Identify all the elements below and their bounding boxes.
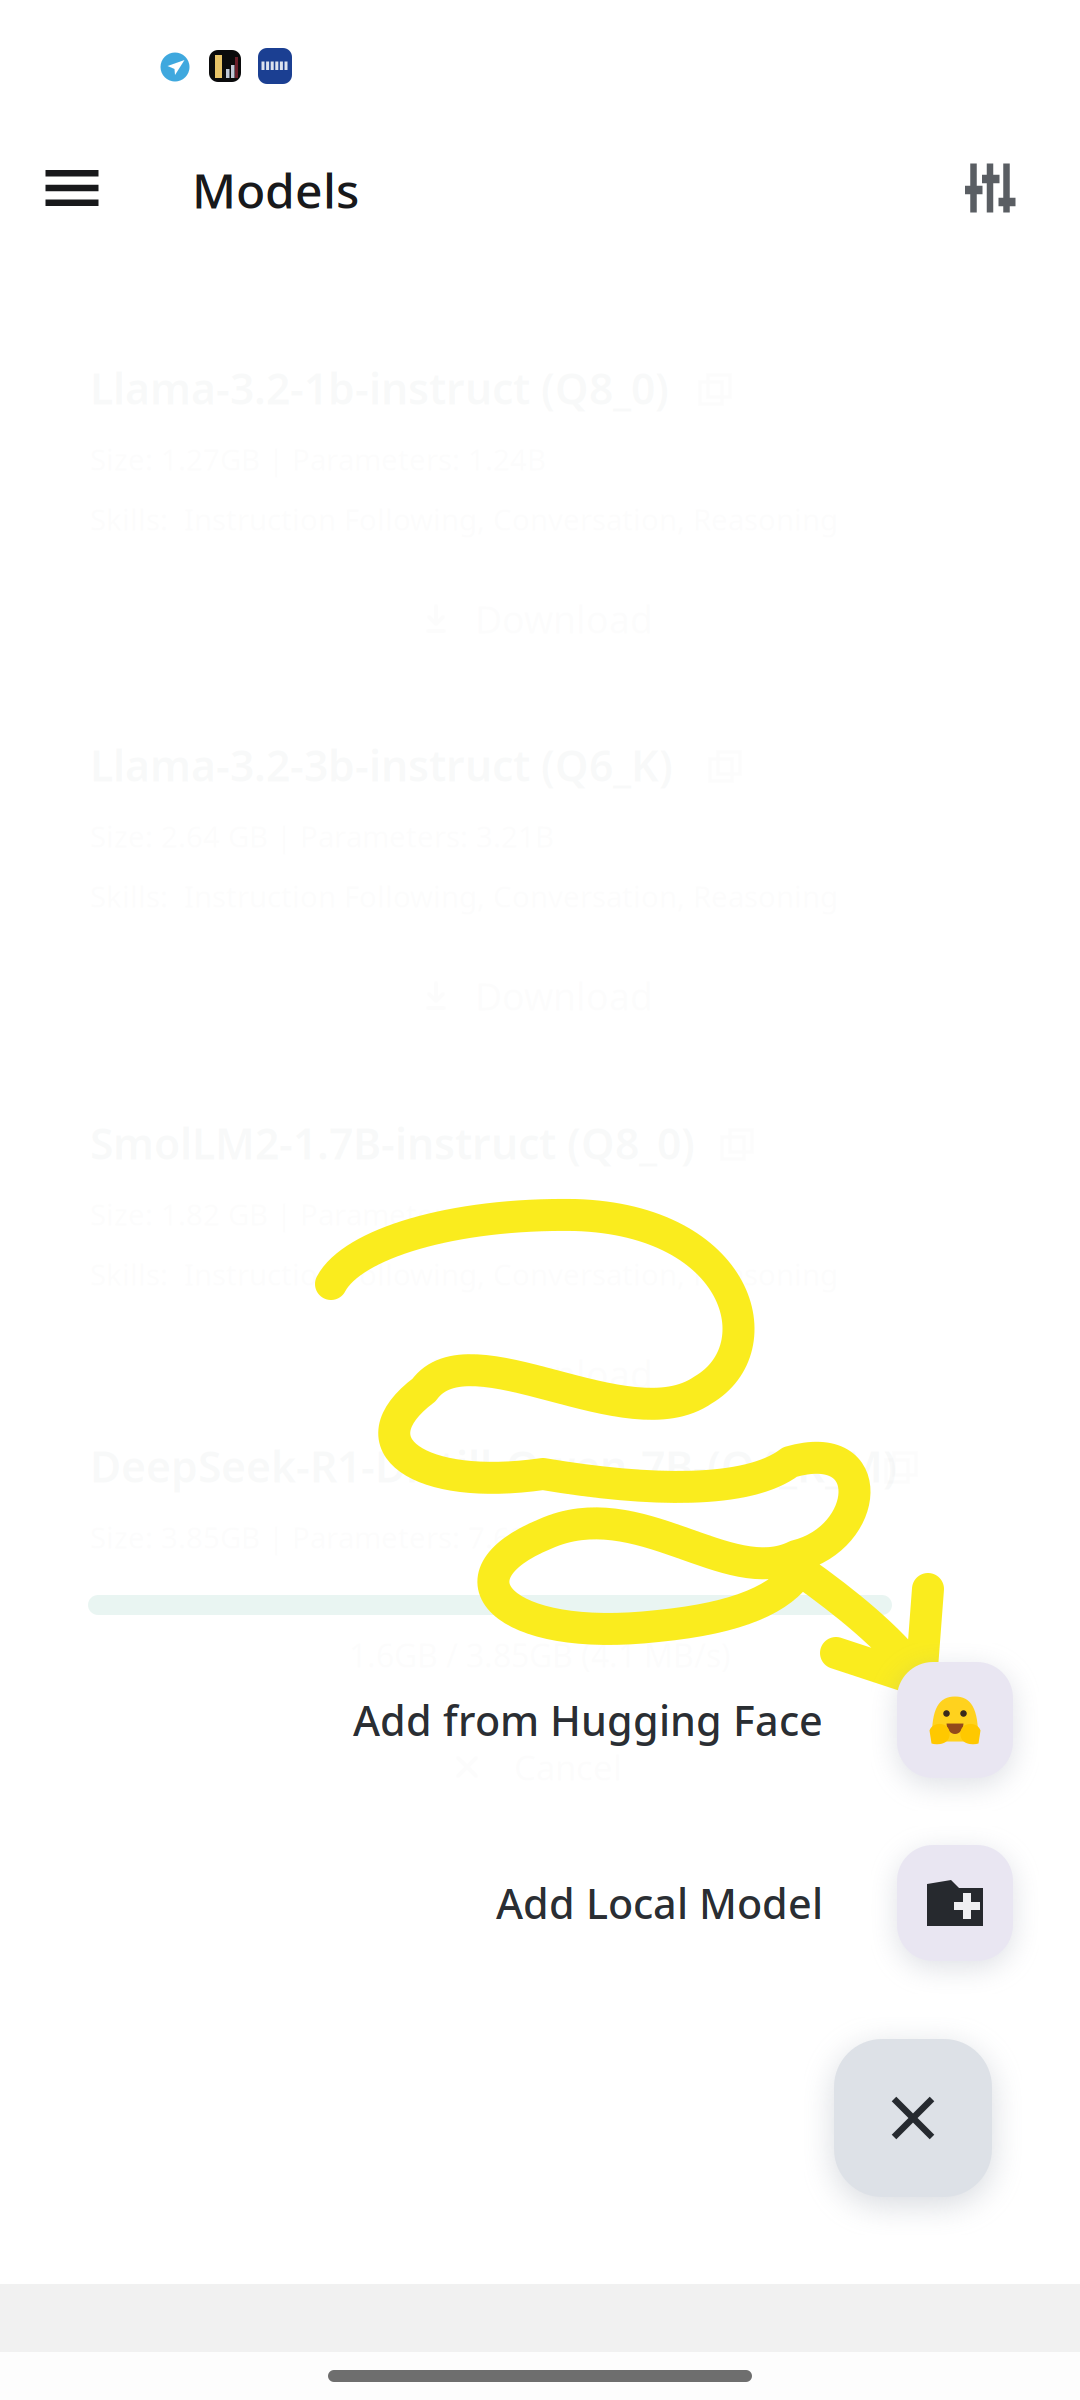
staticText: Add Local Model xyxy=(496,1876,823,1930)
staticText: Cancel xyxy=(514,1744,622,1790)
staticText: Add from Hugging Face xyxy=(353,1693,823,1747)
staticText: Download xyxy=(475,1349,653,1399)
staticText: DeepSeek-R1-Distill-Qwen-7B-(Q4_K_M) xyxy=(90,1438,897,1494)
staticText: 1.6GB / 3.85GB (4.1 MB/s) xyxy=(349,1634,731,1676)
staticText: Models xyxy=(192,158,359,222)
button[interactable]: Menu xyxy=(16,132,128,244)
staticText: Size: 3.85GB | Parameters: 7.62B xyxy=(90,1517,546,1556)
staticText: Skills: Instruction Following, Conversat… xyxy=(90,1254,838,1293)
button[interactable]: Close xyxy=(834,2039,992,2197)
button[interactable]: Settings xyxy=(934,132,1046,244)
staticText: Size: 1.82 GB | Parameters: 1.71B xyxy=(90,1194,554,1233)
button[interactable]: Add Local Model xyxy=(293,1845,1013,1961)
button[interactable]: Add from Hugging Face xyxy=(293,1662,1013,1778)
